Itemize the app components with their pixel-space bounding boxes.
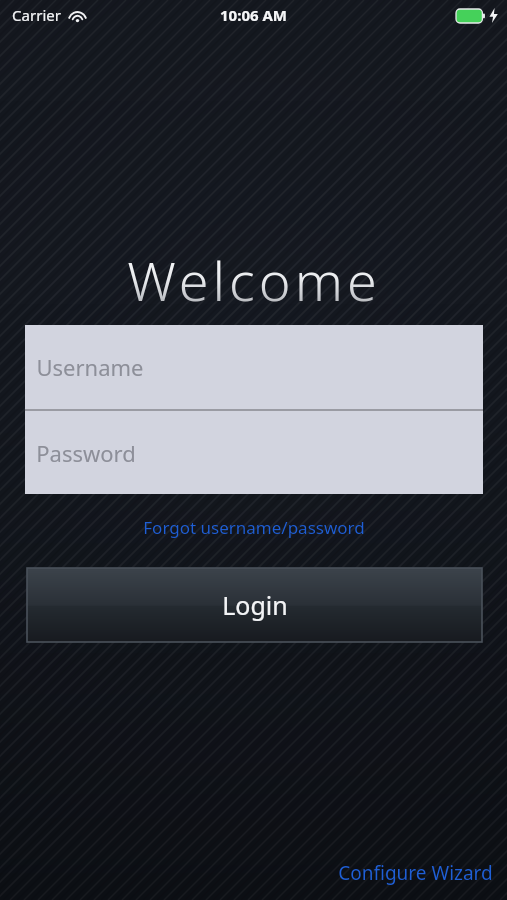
staticText: Username: [36, 352, 144, 382]
button[interactable]: Configure Wizard: [332, 856, 499, 890]
staticText: Carrier: [12, 5, 61, 25]
button[interactable]: Username: [25, 325, 483, 409]
staticText: Login: [222, 588, 288, 622]
staticText: Welcome: [127, 243, 381, 317]
staticText: Configure Wizard: [338, 860, 493, 886]
staticText: Forgot username/password: [143, 516, 365, 539]
button[interactable]: Login: [27, 568, 482, 642]
other: Charging: [489, 8, 498, 23]
button[interactable]: Password: [25, 411, 483, 494]
staticText: Password: [36, 438, 136, 468]
staticText: 10:06 AM: [220, 5, 287, 25]
button[interactable]: Forgot username/password: [137, 513, 371, 542]
